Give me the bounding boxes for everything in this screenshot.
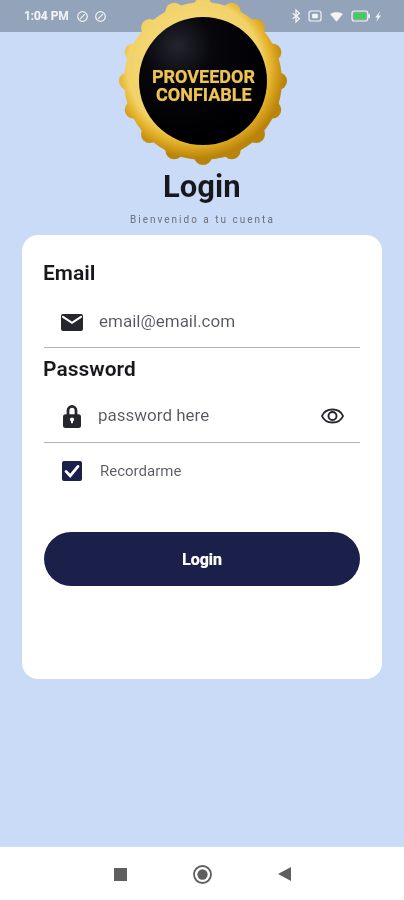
staticText: Recordarme xyxy=(100,462,182,480)
button[interactable]: Back xyxy=(261,851,307,897)
staticText: Bienvenido a tu cuenta xyxy=(130,214,275,226)
staticText: PROVEEDOR xyxy=(152,66,255,87)
button[interactable]: Home xyxy=(179,851,225,897)
staticText: CONFIABLE xyxy=(156,84,252,105)
button[interactable]: email@email.com xyxy=(44,304,360,340)
staticText: Password xyxy=(43,357,136,382)
button[interactable]: Show password xyxy=(316,400,348,432)
button[interactable]: Recordarme xyxy=(62,457,182,485)
staticText: Email xyxy=(43,261,96,286)
staticText: Login xyxy=(182,550,223,569)
button[interactable]: Login xyxy=(44,532,360,586)
staticText: password here xyxy=(98,405,210,425)
staticText: email@email.com xyxy=(99,311,236,331)
staticText: 1:04 PM xyxy=(24,9,69,23)
button[interactable]: Recents xyxy=(97,851,143,897)
button[interactable]: password here xyxy=(44,398,360,434)
staticText: Login xyxy=(163,168,241,204)
